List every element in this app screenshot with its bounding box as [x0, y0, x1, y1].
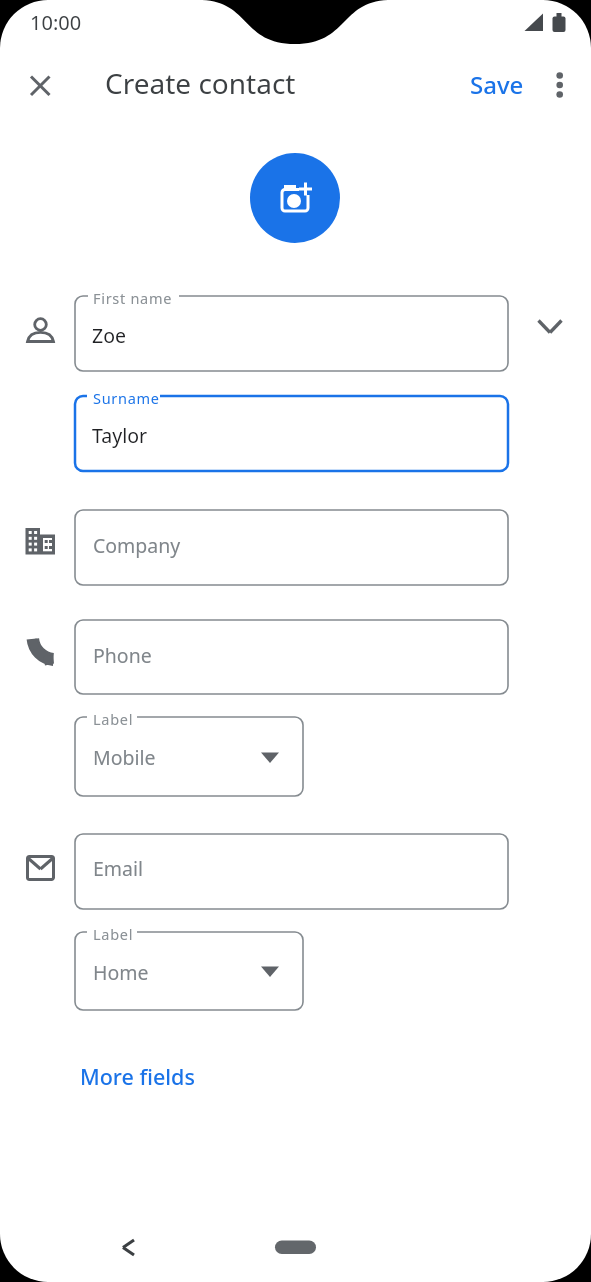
staticText: Surname — [93, 388, 160, 408]
staticText: Label — [93, 924, 134, 944]
staticText: Phone — [93, 642, 152, 669]
staticText: Mobile — [93, 744, 156, 771]
staticText: Create contact — [105, 64, 296, 102]
staticText: More fields — [80, 1062, 195, 1091]
staticText: Taylor — [92, 422, 148, 449]
staticText: 10:00 — [30, 9, 82, 36]
staticText: Email — [93, 855, 144, 882]
staticText: Home — [93, 959, 149, 986]
staticText: Save — [470, 68, 524, 101]
staticText: Company — [93, 532, 181, 559]
staticText: Zoe — [92, 322, 126, 349]
staticText: Label — [93, 709, 134, 729]
staticText: First name — [93, 288, 173, 308]
